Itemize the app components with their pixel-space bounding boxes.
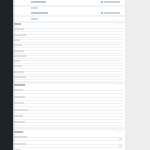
button[interactable] <box>101 1 120 3</box>
button[interactable] <box>13 141 125 148</box>
button[interactable] <box>13 37 125 42</box>
button[interactable]: More options <box>116 23 121 24</box>
button[interactable] <box>13 53 125 58</box>
button[interactable] <box>13 32 125 37</box>
button[interactable] <box>13 87 125 93</box>
button[interactable] <box>13 26 125 31</box>
button[interactable] <box>13 107 125 113</box>
button[interactable] <box>13 134 125 141</box>
button[interactable] <box>13 74 125 79</box>
button[interactable] <box>13 48 125 53</box>
button[interactable] <box>13 100 125 106</box>
button[interactable]: More options <box>116 131 121 132</box>
button[interactable]: More options <box>116 84 121 85</box>
button[interactable] <box>13 63 125 68</box>
button[interactable] <box>13 69 125 74</box>
button[interactable] <box>101 12 120 14</box>
button[interactable] <box>13 119 125 125</box>
button[interactable] <box>13 113 125 119</box>
button[interactable] <box>13 42 125 47</box>
button[interactable] <box>13 147 125 150</box>
button[interactable] <box>13 94 125 100</box>
button[interactable] <box>13 58 125 63</box>
